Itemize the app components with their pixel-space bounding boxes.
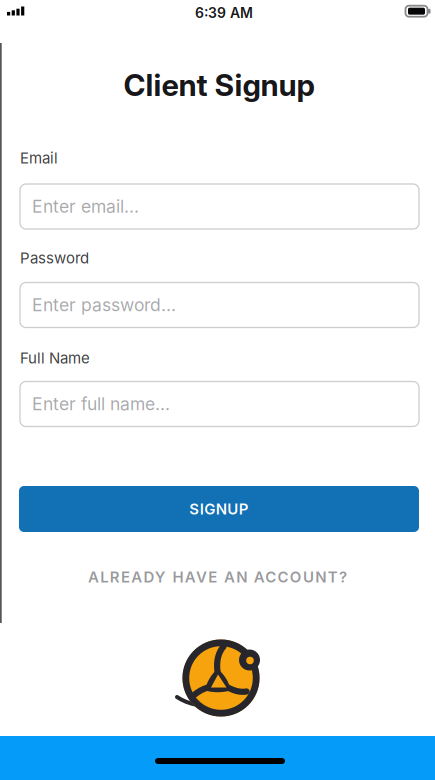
button[interactable]: ALREADY HAVE AN ACCOUNT? (0, 559, 435, 595)
staticText: Full Name (20, 349, 90, 367)
staticText: Client Signup (123, 67, 314, 103)
staticText: SIGNUP (189, 500, 249, 518)
staticText: Enter password... (32, 294, 176, 316)
staticText: Enter full name... (32, 393, 170, 415)
staticText: Password (20, 249, 89, 267)
staticText: 6:39 AM (195, 4, 253, 21)
button[interactable]: SIGNUP (19, 486, 419, 532)
staticText: ALREADY HAVE AN ACCOUNT? (88, 568, 347, 586)
staticText: Enter email... (32, 196, 139, 217)
staticText: Email (20, 149, 58, 167)
